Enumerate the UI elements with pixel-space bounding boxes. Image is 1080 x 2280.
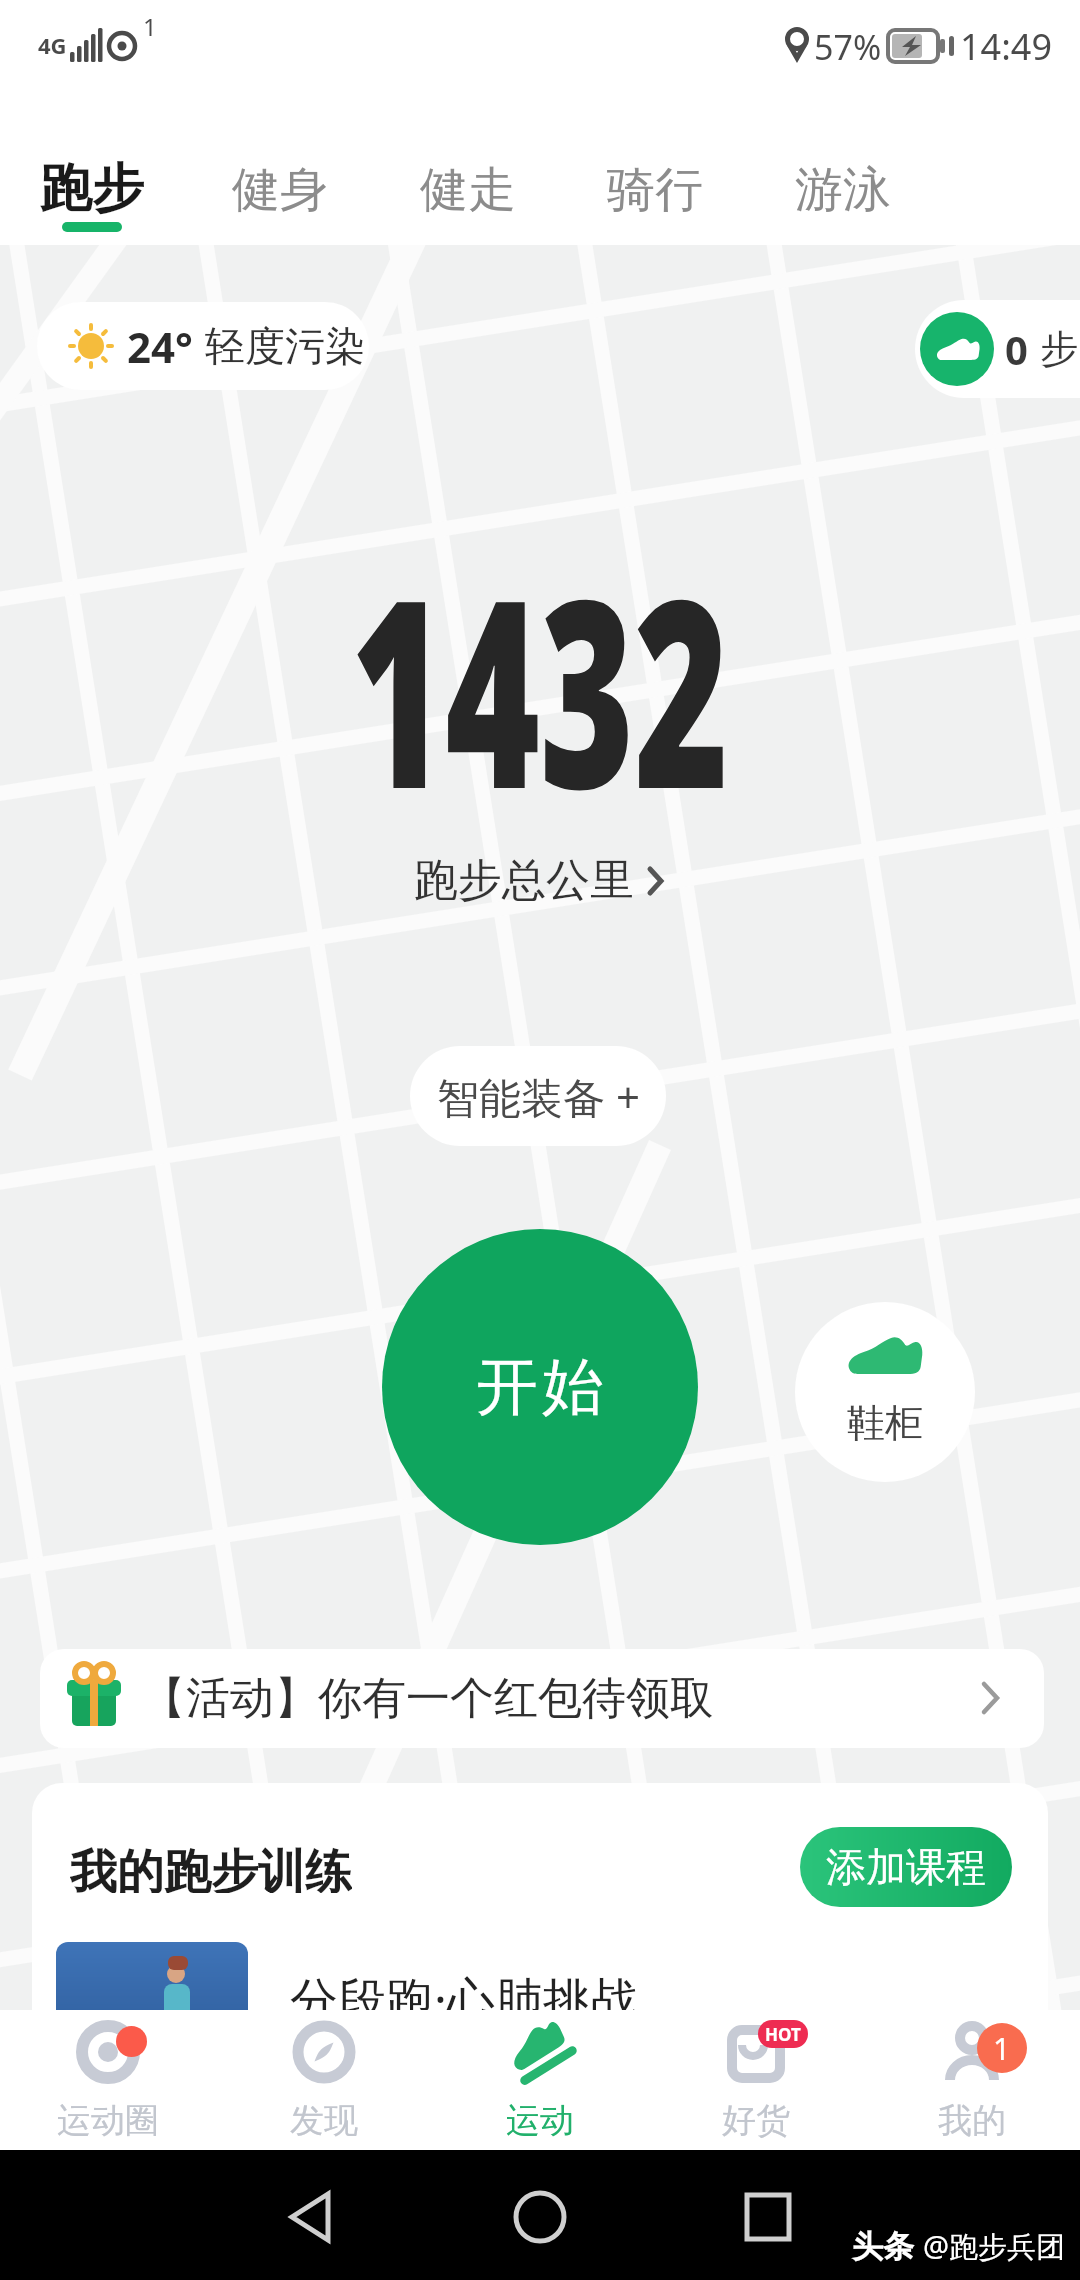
staticText: 运动圈 bbox=[57, 2099, 159, 2142]
staticText: 鞋柜 bbox=[847, 1399, 923, 1447]
staticText: HOT bbox=[765, 2023, 801, 2046]
button[interactable]: 好货 bbox=[666, 2012, 846, 2148]
button[interactable]: 【活动】你有一个红包待领取 bbox=[40, 1649, 1044, 1748]
button[interactable]: 分段跑·心肺挑战 bbox=[56, 1942, 1016, 2082]
button[interactable]: 游泳 bbox=[795, 160, 891, 214]
button[interactable]: 智能装备 + bbox=[410, 1046, 666, 1146]
staticText: 我的跑步训练 bbox=[70, 1843, 352, 1893]
button[interactable]: 跑步总公里 bbox=[0, 845, 1080, 915]
staticText: 好货 bbox=[722, 2099, 790, 2142]
staticText: 【活动】你有一个红包待领取 bbox=[142, 1671, 714, 1726]
button[interactable]: 骑行 bbox=[607, 160, 703, 214]
staticText: 运动 bbox=[506, 2099, 574, 2142]
staticText: 开始 bbox=[474, 1348, 606, 1426]
button[interactable]: 添加课程 bbox=[800, 1827, 1012, 1907]
button[interactable]: 24° bbox=[37, 302, 369, 390]
staticText: 1 bbox=[993, 2028, 1011, 2069]
staticText: 骑行 bbox=[607, 160, 703, 214]
staticText: 跑步总公里 bbox=[414, 853, 634, 908]
button[interactable]: 健走 bbox=[420, 160, 516, 214]
staticText: 游泳 bbox=[795, 160, 891, 214]
staticText: 14:49 bbox=[960, 22, 1053, 68]
staticText: 添加课程 bbox=[826, 1842, 986, 1892]
button[interactable]: 0 bbox=[915, 300, 1080, 398]
button[interactable]: 鞋柜 bbox=[795, 1302, 975, 1482]
staticText: 57% bbox=[814, 24, 882, 68]
staticText: 步 bbox=[1040, 325, 1078, 373]
button[interactable]: 我的 bbox=[882, 2012, 1062, 2148]
button[interactable]: 运动 bbox=[450, 2012, 630, 2148]
staticText: 分段跑·心肺挑战 bbox=[290, 1966, 639, 2026]
staticText: 轻度污染 bbox=[205, 321, 365, 371]
staticText: 头条 bbox=[852, 2227, 914, 2266]
button[interactable] bbox=[514, 2190, 566, 2244]
button[interactable] bbox=[744, 2192, 792, 2242]
button[interactable]: 健身 bbox=[232, 160, 328, 214]
staticText: 24° bbox=[127, 318, 193, 375]
staticText: 健身 bbox=[232, 160, 328, 214]
staticText: @跑步兵团 bbox=[923, 2226, 1066, 2266]
staticText: 跑步 bbox=[40, 156, 144, 216]
staticText: 1 bbox=[143, 10, 157, 40]
staticText: 我的 bbox=[938, 2099, 1006, 2142]
staticText: 智能装备 + bbox=[437, 1068, 640, 1125]
button[interactable]: 运动圈 bbox=[18, 2012, 198, 2148]
staticText: 0 bbox=[1005, 322, 1028, 376]
button[interactable]: 开始 bbox=[382, 1229, 698, 1545]
button[interactable] bbox=[284, 2190, 336, 2244]
staticText: 发现 bbox=[290, 2099, 358, 2142]
button[interactable]: 发现 bbox=[234, 2012, 414, 2148]
staticText: 1432 bbox=[351, 510, 729, 830]
button[interactable]: 跑步 bbox=[40, 156, 144, 216]
staticText: 健走 bbox=[420, 160, 516, 214]
staticText: 4G bbox=[38, 30, 67, 60]
